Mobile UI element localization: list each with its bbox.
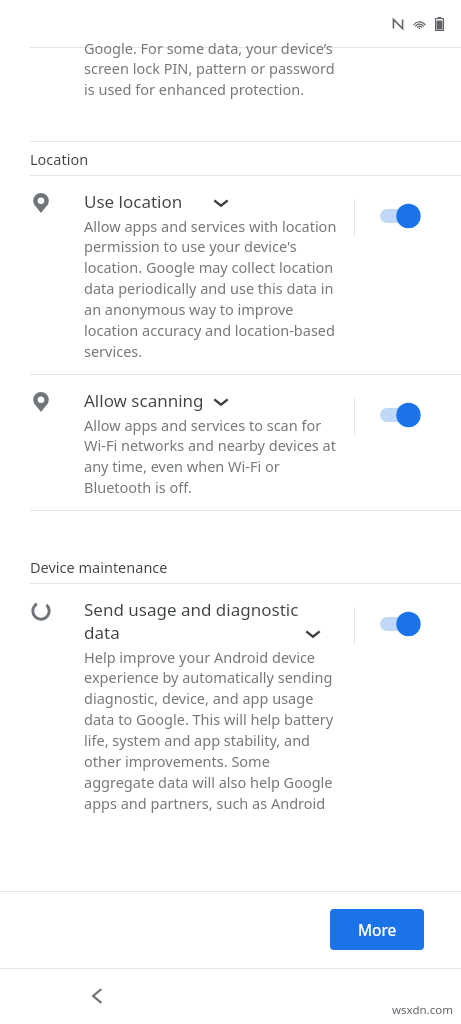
button[interactable]: Use location toggle <box>377 199 427 233</box>
staticText: Allow apps and services to scan for Wi-F… <box>84 415 340 498</box>
staticText: wsxdn.com <box>392 1002 453 1018</box>
staticText: Send usage and diagnostic data <box>84 598 300 644</box>
staticText: Allow apps and services with location pe… <box>84 216 340 362</box>
button[interactable]: Allow scanning <box>0 375 461 510</box>
button[interactable]: Send usage and diagnostic data toggle <box>377 607 427 641</box>
button[interactable]: Back <box>74 973 120 1019</box>
staticText: Google. For some data, your device’s scr… <box>84 38 346 100</box>
staticText: Use location <box>84 190 208 213</box>
button[interactable]: More <box>330 909 424 950</box>
button[interactable]: Allow scanning toggle <box>377 398 427 432</box>
button[interactable]: Send usage and diagnostic data <box>0 584 461 826</box>
staticText: Help improve your Android device experie… <box>84 647 340 814</box>
staticText: Allow scanning <box>84 389 208 412</box>
staticText: More <box>358 919 397 940</box>
button[interactable]: Use location <box>0 176 461 374</box>
staticText: Device maintenance <box>30 557 168 577</box>
staticText: Location <box>30 149 89 169</box>
